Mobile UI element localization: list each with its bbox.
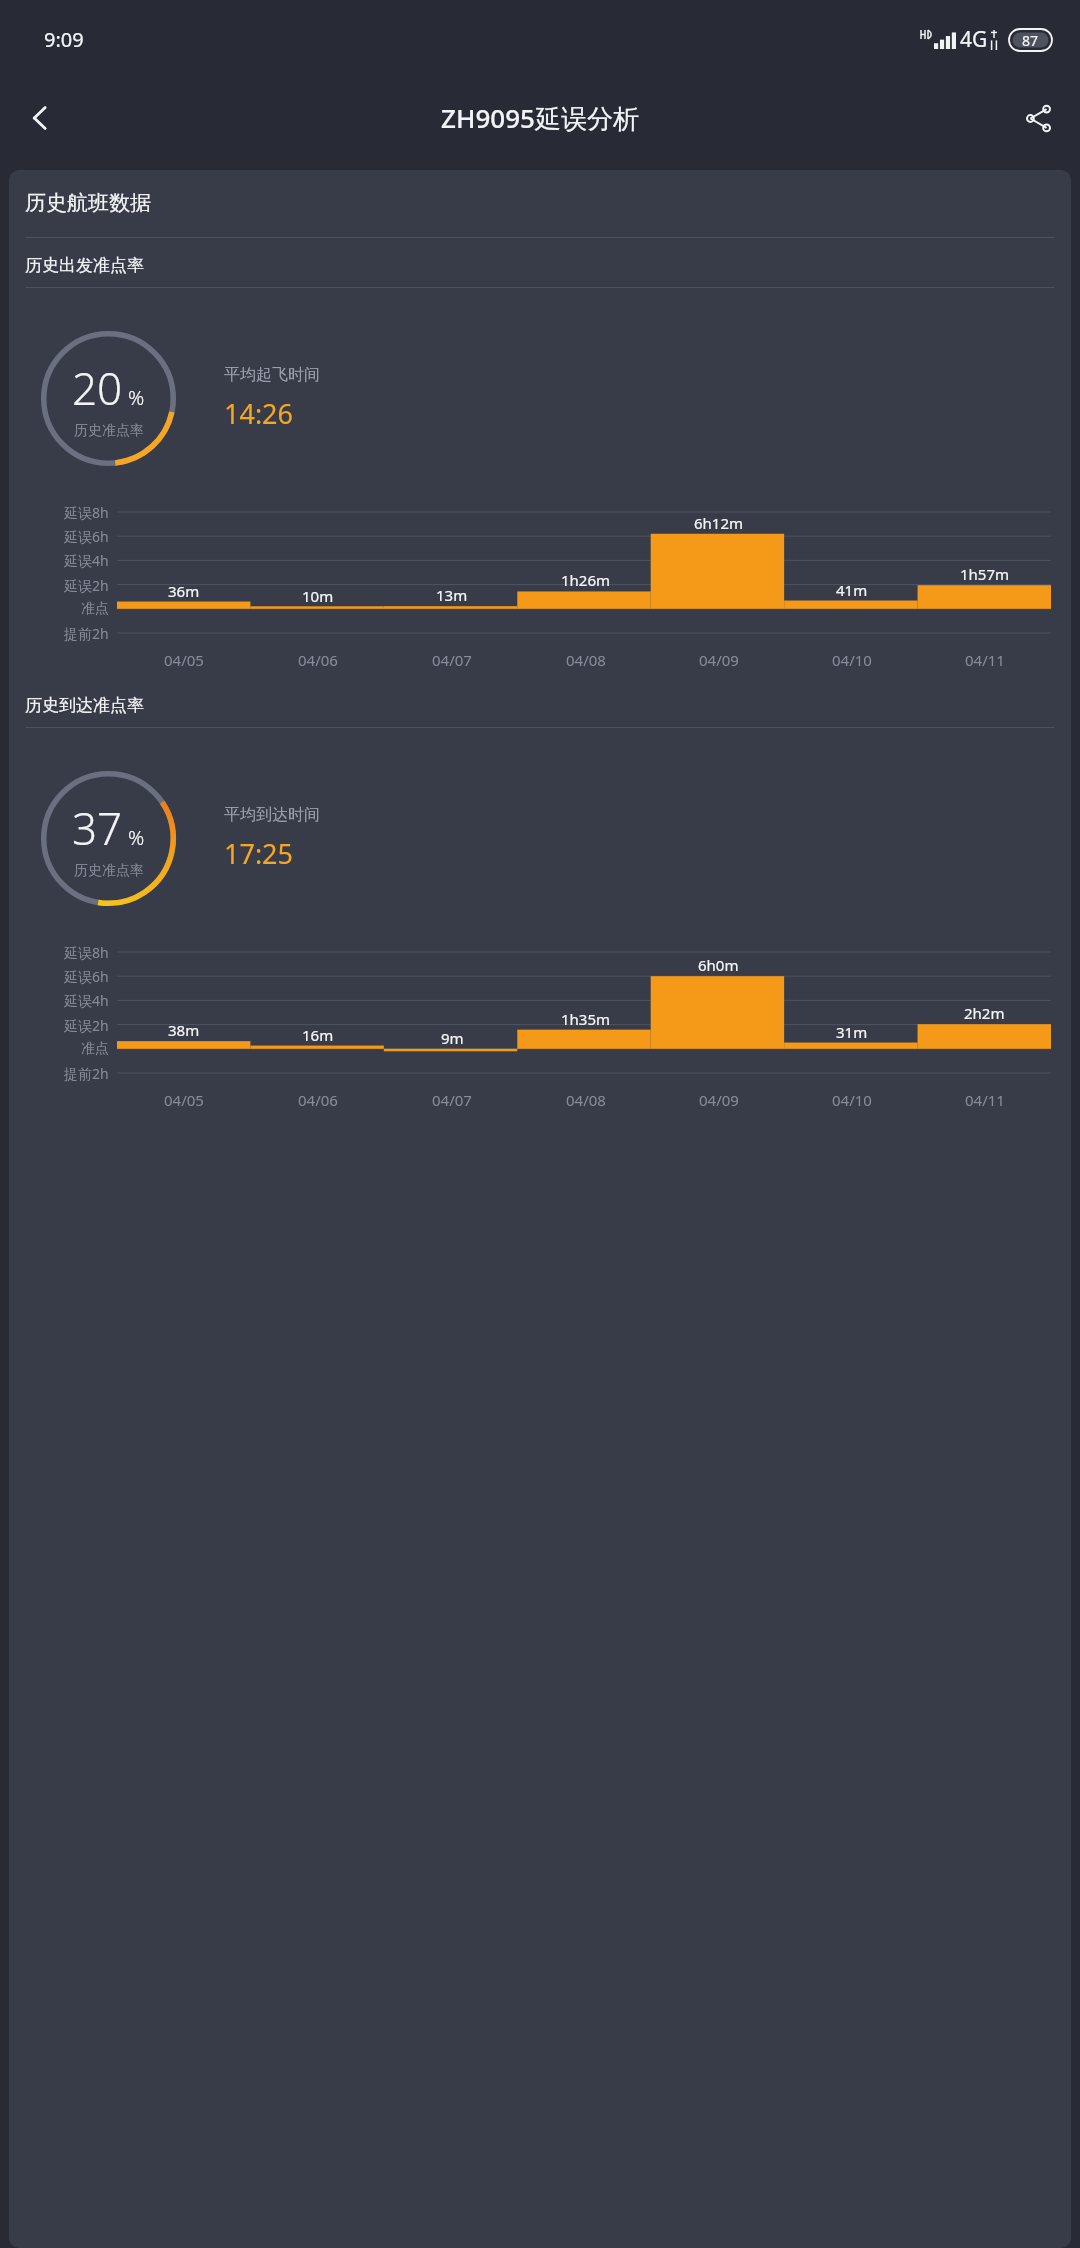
staticText: 04/09	[699, 650, 739, 670]
staticText: 延误6h	[64, 967, 109, 986]
staticText: 13m	[436, 585, 468, 605]
staticText: 延误8h	[64, 943, 109, 962]
staticText: 20	[72, 358, 123, 418]
staticText: 04/05	[164, 1090, 204, 1110]
staticText: 延误6h	[64, 527, 109, 546]
staticText: %	[128, 384, 145, 411]
staticText: 04/10	[832, 650, 872, 670]
staticText: 提前2h	[64, 624, 109, 643]
staticText: 04/06	[298, 1090, 338, 1110]
staticText: 04/06	[298, 650, 338, 670]
staticText: 提前2h	[64, 1064, 109, 1083]
button[interactable]: Back	[10, 88, 70, 148]
staticText: 历史航班数据	[25, 190, 151, 216]
staticText: 6h12m	[694, 513, 744, 533]
staticText: 16m	[302, 1025, 334, 1045]
staticText: 04/11	[965, 1090, 1005, 1110]
staticText: 9m	[441, 1028, 464, 1048]
staticText: 历史准点率	[74, 862, 144, 880]
staticText: 9:09	[44, 26, 84, 53]
staticText: 04/05	[164, 650, 204, 670]
staticText: 36m	[168, 581, 200, 601]
staticText: 1h26m	[561, 570, 611, 590]
staticText: 平均起飞时间	[224, 365, 320, 385]
staticText: 平均到达时间	[224, 805, 320, 825]
staticText: 04/10	[832, 1090, 872, 1110]
staticText: 04/07	[432, 1090, 472, 1110]
staticText: 历史出发准点率	[25, 255, 144, 276]
staticText: 历史到达准点率	[25, 695, 144, 716]
staticText: 17:25	[224, 835, 294, 872]
staticText: 4G	[960, 25, 988, 54]
staticText: 准点	[81, 600, 109, 618]
staticText: ZH9095延误分析	[441, 100, 639, 136]
staticText: 04/08	[566, 1090, 606, 1110]
staticText: 04/07	[432, 650, 472, 670]
staticText: 延误2h	[64, 1016, 109, 1035]
staticText: 41m	[836, 580, 868, 600]
staticText: 38m	[168, 1020, 200, 1040]
staticText: 1h57m	[960, 564, 1010, 584]
staticText: %	[128, 824, 145, 851]
staticText: 10m	[302, 586, 334, 606]
staticText: 延误8h	[64, 503, 109, 522]
staticText: 04/11	[965, 650, 1005, 670]
staticText: 87	[1022, 31, 1039, 50]
staticText: 2h2m	[964, 1003, 1005, 1023]
staticText: 延误4h	[64, 551, 109, 570]
staticText: 14:26	[224, 395, 294, 432]
staticText: 历史准点率	[74, 422, 144, 440]
staticText: 04/08	[566, 650, 606, 670]
button[interactable]: Share	[1008, 88, 1068, 148]
staticText: 延误4h	[64, 991, 109, 1010]
staticText: 37	[72, 798, 123, 858]
staticText: 延误2h	[64, 576, 109, 595]
staticText: 04/09	[699, 1090, 739, 1110]
staticText: 31m	[836, 1022, 868, 1042]
staticText: 1h35m	[561, 1009, 611, 1029]
staticText: 准点	[81, 1040, 109, 1058]
staticText: 6h0m	[698, 955, 739, 975]
